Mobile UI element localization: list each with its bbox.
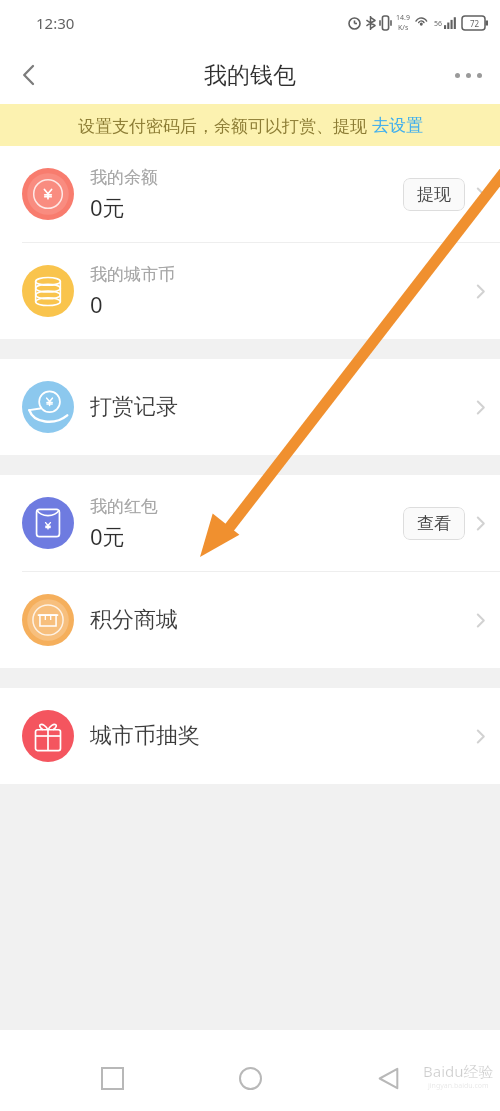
button[interactable]: 积分商城	[0, 572, 500, 668]
button[interactable]: 设置支付密码后，余额可以打赏、提现	[0, 104, 500, 146]
staticText: 12:30	[36, 13, 75, 33]
staticText: 去设置	[372, 115, 423, 136]
staticText: K/s	[398, 23, 409, 33]
staticText: 我的余额	[90, 167, 158, 188]
staticText: 我的红包	[90, 496, 158, 517]
button[interactable]: 我的余额	[0, 146, 500, 242]
button[interactable]: 提现	[403, 178, 465, 211]
staticText: 设置支付密码后，余额可以打赏、提现	[78, 114, 372, 137]
button[interactable]: Back	[362, 1052, 414, 1104]
button[interactable]: 我的红包	[0, 475, 500, 571]
staticText: 我的钱包	[204, 61, 296, 90]
staticText: 城市币抽奖	[90, 722, 473, 750]
staticText: 0元	[90, 521, 125, 551]
button[interactable]: 查看	[403, 507, 465, 540]
button[interactable]: 我的城市币	[0, 243, 500, 339]
staticText: 提现	[417, 184, 451, 205]
staticText: 72	[470, 18, 480, 29]
staticText: 0元	[90, 192, 125, 222]
staticText: 打赏记录	[90, 393, 473, 421]
button[interactable]: 城市币抽奖	[0, 688, 500, 784]
button[interactable]: Home	[224, 1052, 276, 1104]
button[interactable]: 打赏记录	[0, 359, 500, 455]
staticText: Baidu经验	[423, 1061, 494, 1081]
staticText: 14.9	[396, 13, 410, 23]
staticText: 查看	[417, 513, 451, 534]
staticText: 0	[90, 289, 103, 319]
staticText: 我的城市币	[90, 264, 175, 285]
button[interactable]: More options	[437, 46, 500, 104]
button[interactable]: Back	[0, 46, 58, 104]
staticText: jingyan.baidu.com	[428, 1081, 489, 1091]
staticText: 积分商城	[90, 606, 473, 634]
button[interactable]: Recent apps	[86, 1052, 138, 1104]
staticText: 56	[434, 19, 443, 29]
